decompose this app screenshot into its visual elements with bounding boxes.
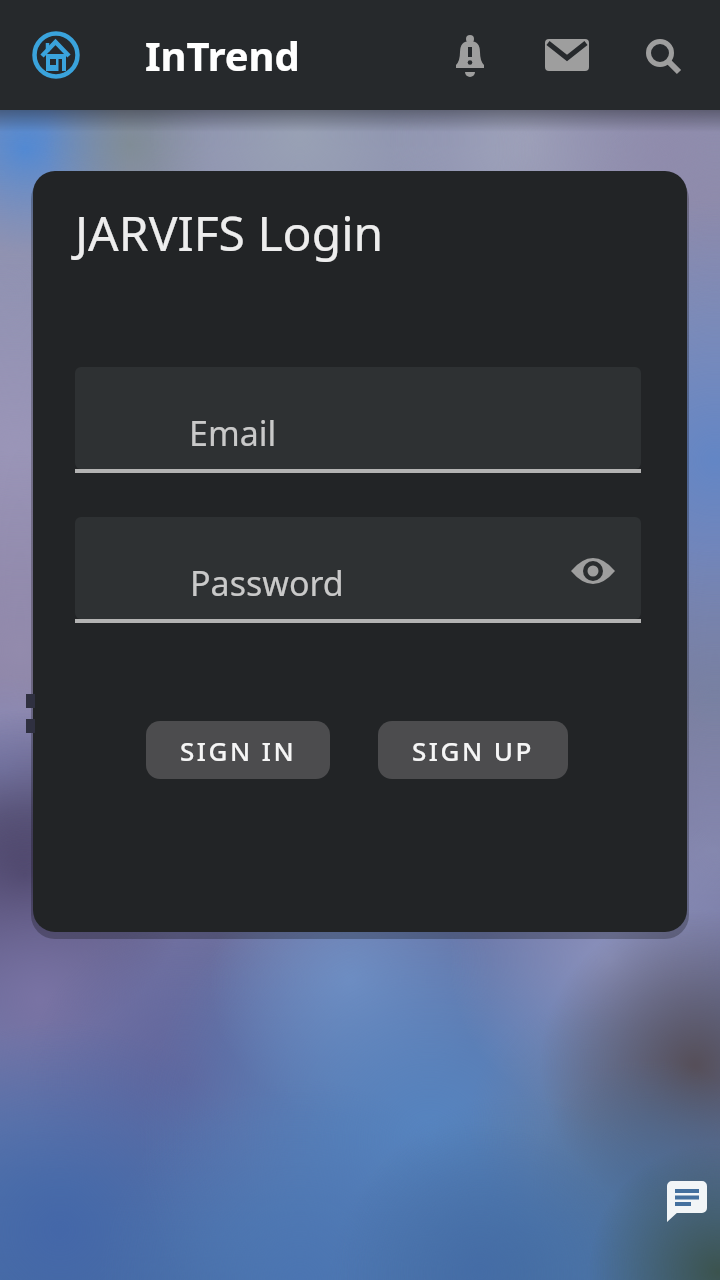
- button[interactable]: [545, 39, 589, 71]
- staticText: JARVIFS Login: [75, 200, 384, 265]
- staticText: InTrend: [145, 28, 300, 82]
- button[interactable]: [31, 30, 81, 80]
- staticText: SIGN UP: [412, 733, 534, 768]
- button[interactable]: Password: [75, 517, 641, 619]
- button[interactable]: Email: [75, 367, 641, 469]
- staticText: SIGN IN: [180, 733, 297, 768]
- button[interactable]: SIGN IN: [146, 721, 330, 779]
- staticText: Email: [189, 410, 277, 456]
- button[interactable]: SIGN UP: [378, 721, 568, 779]
- button[interactable]: [645, 38, 683, 76]
- button[interactable]: [571, 556, 615, 586]
- staticText: Password: [190, 560, 344, 606]
- button[interactable]: [448, 34, 492, 82]
- button[interactable]: [667, 1181, 708, 1222]
